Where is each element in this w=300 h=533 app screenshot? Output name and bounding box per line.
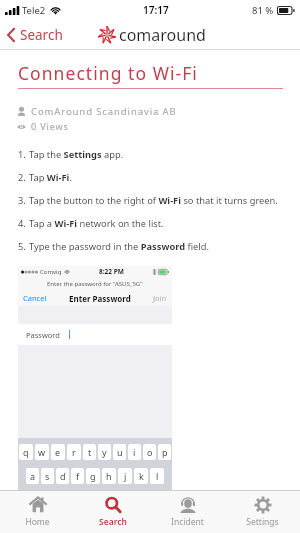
staticText: d bbox=[60, 470, 66, 482]
other: Incident bbox=[179, 496, 197, 514]
staticText: Tap a Wi-Fi network on the list. bbox=[29, 217, 164, 230]
staticText: 3. bbox=[18, 194, 26, 207]
staticText: a bbox=[30, 470, 36, 482]
staticText: Connecting to Wi-Fi bbox=[18, 61, 198, 85]
staticText: l bbox=[156, 470, 159, 482]
staticText: Settings bbox=[246, 516, 279, 528]
staticText: comaround bbox=[119, 24, 206, 46]
staticText: Search bbox=[20, 26, 63, 44]
staticText: 1. bbox=[18, 148, 26, 161]
staticText: s bbox=[45, 470, 50, 482]
staticText: h bbox=[106, 470, 112, 482]
staticText: i bbox=[133, 446, 136, 458]
staticText: 5. bbox=[18, 240, 26, 253]
staticText: Home bbox=[25, 516, 50, 528]
staticText: k bbox=[139, 470, 144, 482]
staticText: Tap the button to the right of Wi-Fi so … bbox=[29, 194, 278, 207]
other: Home bbox=[29, 496, 47, 514]
staticText: o bbox=[147, 446, 153, 458]
staticText: y bbox=[102, 446, 107, 458]
staticText: g bbox=[90, 470, 96, 482]
staticText: Cancel bbox=[23, 293, 47, 303]
staticText: q bbox=[23, 446, 29, 458]
staticText: Enter the password for "ASUS_5G" bbox=[47, 280, 143, 288]
staticText: 81 % bbox=[252, 4, 274, 17]
staticText: Password bbox=[26, 330, 60, 340]
staticText: f bbox=[76, 470, 80, 482]
staticText: e bbox=[55, 446, 61, 458]
other: Settings bbox=[254, 496, 272, 514]
staticText: Tele2 bbox=[22, 4, 46, 17]
button[interactable]: Home bbox=[0, 491, 75, 533]
staticText: Tap the Settings app. bbox=[29, 148, 124, 161]
staticText: 2. bbox=[18, 171, 26, 184]
staticText: r bbox=[72, 446, 76, 458]
staticText: 17:17 bbox=[143, 3, 169, 17]
other: Search bbox=[104, 496, 122, 514]
staticText: Enter Password bbox=[69, 293, 131, 304]
staticText: 0 Views bbox=[31, 120, 69, 132]
staticText: Search bbox=[99, 516, 127, 528]
staticText: t bbox=[88, 446, 92, 458]
button[interactable]: Incident bbox=[150, 491, 225, 533]
staticText: Join bbox=[153, 293, 167, 303]
button[interactable]: Settings bbox=[225, 491, 300, 533]
staticText: p bbox=[162, 446, 168, 458]
button[interactable]: Search bbox=[0, 22, 69, 48]
staticText: u bbox=[117, 446, 123, 458]
staticText: Comviq bbox=[40, 268, 62, 276]
staticText: Tap Wi-Fi. bbox=[29, 171, 72, 184]
staticText: 8:22 PM bbox=[99, 267, 124, 276]
staticText: j bbox=[124, 470, 127, 482]
staticText: Incident bbox=[171, 516, 204, 528]
staticText: w bbox=[38, 446, 46, 458]
button[interactable]: Search bbox=[75, 491, 150, 533]
staticText: ComAround Scandinavia AB bbox=[31, 105, 177, 118]
staticText: Type the password in the Password field. bbox=[29, 240, 209, 253]
staticText: 4. bbox=[18, 217, 26, 230]
